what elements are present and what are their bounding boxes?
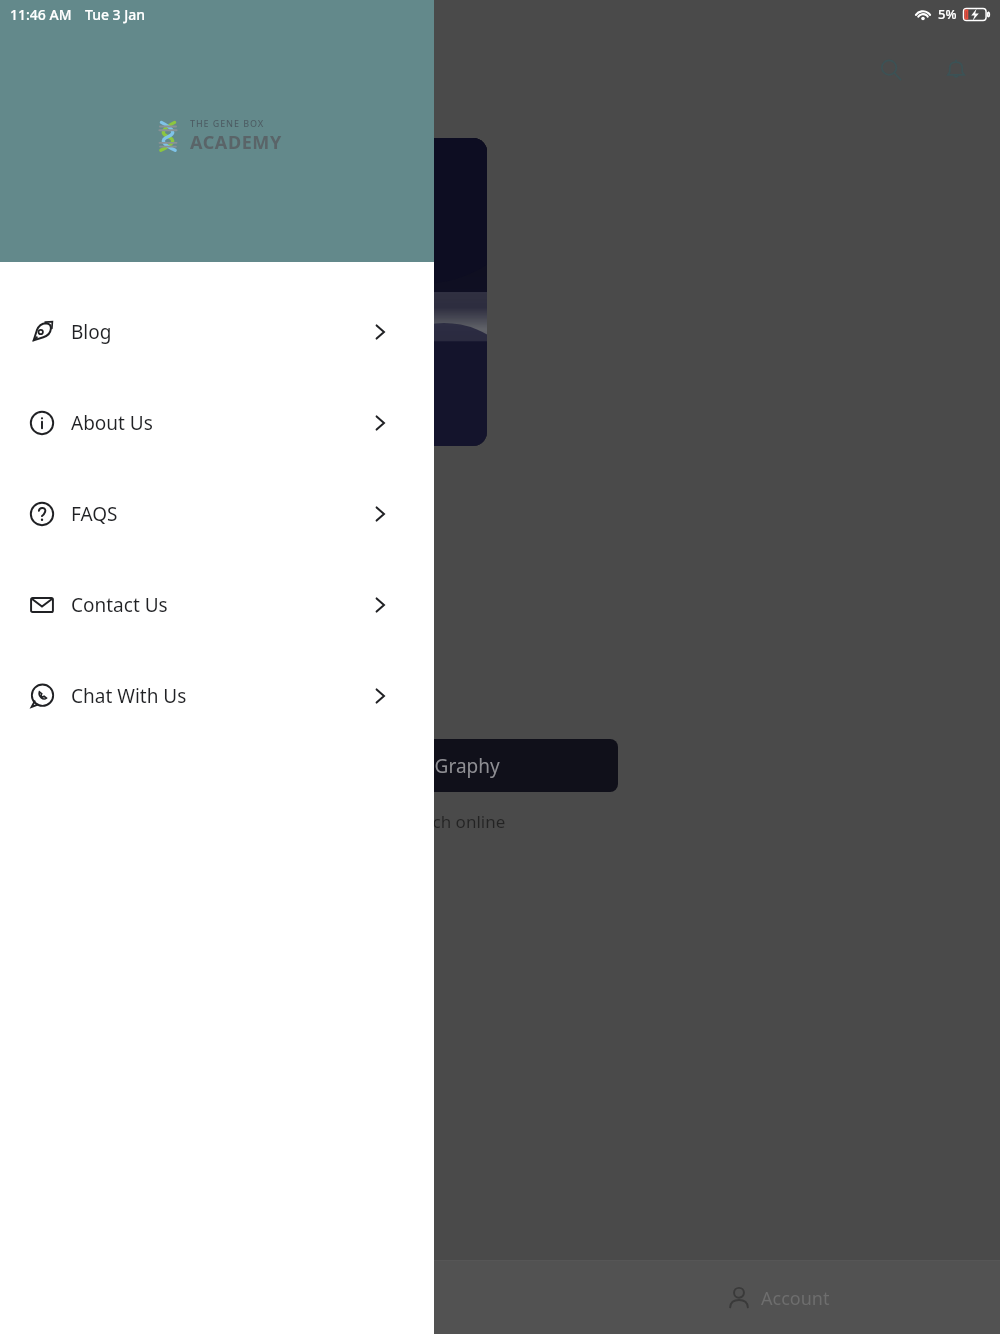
staticText: Account	[761, 1286, 830, 1311]
staticText: Launch your Graphy	[319, 753, 500, 779]
staticText: THE GENE BOX	[190, 117, 265, 129]
button[interactable]: About Us	[0, 377, 434, 468]
staticText: Chat With Us	[71, 683, 187, 709]
staticText: Tue 3 Jan	[85, 5, 146, 24]
staticText: Blog	[71, 319, 112, 345]
button[interactable]: Contact Us	[0, 559, 434, 650]
staticText: 11:46 AM	[10, 5, 72, 24]
staticText: FAQS	[71, 501, 118, 527]
button[interactable]: Blog	[0, 286, 434, 377]
button[interactable]: Launch your Graphy	[200, 739, 618, 792]
staticText: 5%	[938, 5, 957, 23]
staticText: to teach online	[382, 810, 506, 833]
staticText: ACADEMY	[190, 130, 282, 155]
button[interactable]: Account	[718, 1275, 838, 1321]
staticText: Contact Us	[71, 592, 168, 618]
staticText: About Us	[71, 410, 153, 436]
button[interactable]: FAQS	[0, 468, 434, 559]
button[interactable]: Chat With Us	[0, 650, 434, 741]
button[interactable]	[200, 138, 487, 446]
